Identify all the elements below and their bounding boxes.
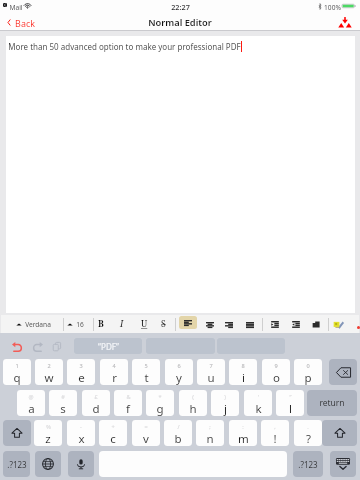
button[interactable]: 1	[3, 359, 31, 385]
button[interactable]: “PDF”	[74, 338, 142, 354]
staticText: &	[126, 393, 131, 401]
staticText: 22:27	[171, 2, 190, 12]
staticText: b	[174, 431, 182, 446]
staticText: I	[120, 318, 124, 330]
staticText: 3	[79, 362, 83, 370]
staticText: r	[112, 370, 117, 385]
staticText: x	[78, 431, 85, 446]
staticText: More than 50 advanced option to make you…	[8, 41, 241, 52]
button[interactable]: :	[229, 420, 257, 446]
staticText: 4	[112, 362, 116, 370]
staticText: 2	[47, 362, 51, 370]
staticText: =	[144, 423, 148, 431]
button[interactable]: 8	[229, 359, 257, 385]
button[interactable]: U	[135, 315, 153, 333]
button[interactable]: (	[179, 390, 207, 416]
staticText: w	[44, 370, 54, 385]
button[interactable]: Align 2	[219, 316, 238, 333]
button[interactable]: £	[82, 390, 110, 416]
staticText: q	[13, 370, 21, 385]
staticText: )	[224, 393, 226, 401]
button[interactable]: Change language	[35, 451, 61, 477]
staticText: l	[289, 401, 292, 416]
button[interactable]: Undo	[7, 337, 26, 356]
button[interactable]: 5	[132, 359, 160, 385]
staticText: @	[28, 393, 34, 401]
button[interactable]: 7	[197, 359, 225, 385]
staticText: +	[111, 423, 115, 431]
staticText: z	[45, 431, 51, 446]
staticText: 1	[15, 362, 19, 370]
button[interactable]: More than 50 advanced option to make you…	[6, 36, 355, 313]
button[interactable]: .	[294, 420, 322, 446]
button[interactable]: 6	[165, 359, 193, 385]
button[interactable]: Align left	[179, 316, 197, 329]
button[interactable]: *	[146, 390, 174, 416]
staticText: f	[126, 401, 130, 416]
button[interactable]: Shift	[3, 420, 31, 446]
button[interactable]: Hide keyboard	[330, 451, 356, 477]
button[interactable]: ‘	[244, 390, 272, 416]
button[interactable]: +	[99, 420, 127, 446]
staticText: y	[176, 370, 182, 385]
button[interactable]: .?123	[293, 451, 323, 477]
button[interactable]: 0	[294, 359, 322, 385]
button[interactable]: Paste	[47, 337, 66, 356]
button[interactable]: Indent 2	[286, 316, 305, 333]
button[interactable]: Shift	[322, 420, 357, 446]
button[interactable]: 2	[35, 359, 63, 385]
button[interactable]: -	[67, 420, 95, 446]
button[interactable]: Verdana	[16, 315, 51, 333]
staticText: 7	[209, 362, 213, 370]
staticText: s	[60, 401, 66, 416]
button[interactable]: Highlighter	[329, 316, 347, 333]
button[interactable]: )	[211, 390, 239, 416]
button[interactable]: /	[164, 420, 192, 446]
button[interactable]: Align 1	[200, 316, 219, 333]
button[interactable]: Back	[6, 14, 35, 31]
button[interactable]: Backspace	[329, 359, 357, 385]
staticText: u	[207, 370, 215, 385]
staticText: /	[177, 423, 180, 431]
staticText: !	[273, 431, 277, 446]
button[interactable]: Indent 1	[265, 316, 284, 333]
button[interactable]: Redo	[28, 337, 47, 356]
button[interactable]: #	[49, 390, 77, 416]
staticText: a	[28, 401, 35, 416]
button[interactable]: 3	[67, 359, 95, 385]
staticText: “PDF”	[98, 341, 119, 352]
button[interactable]: B	[92, 315, 110, 333]
button[interactable]: 4	[100, 359, 128, 385]
button[interactable]: &	[114, 390, 142, 416]
button[interactable]: Export	[335, 15, 354, 30]
button[interactable]: ;	[196, 420, 224, 446]
staticText: return	[319, 397, 345, 409]
button[interactable]: ,	[261, 420, 289, 446]
button[interactable]: 9	[262, 359, 290, 385]
button[interactable]: I	[113, 315, 131, 333]
button[interactable]: return	[307, 390, 357, 416]
button[interactable]: Dictate	[68, 451, 94, 477]
button[interactable]: .?123	[3, 451, 30, 477]
staticText: B	[98, 318, 104, 330]
button[interactable]: S	[154, 315, 172, 333]
staticText: 0	[306, 362, 310, 370]
button[interactable]: Align 3	[240, 316, 259, 333]
staticText: j	[224, 401, 227, 416]
staticText: n	[206, 431, 214, 446]
button[interactable]: 16	[67, 315, 84, 333]
staticText: Verdana	[25, 320, 51, 329]
button[interactable]: %	[34, 420, 62, 446]
staticText: ‘	[258, 393, 259, 401]
button[interactable]: Indent 3	[306, 316, 325, 333]
button[interactable]: @	[17, 390, 45, 416]
staticText: :	[242, 423, 244, 431]
button[interactable]: =	[132, 420, 160, 446]
button[interactable]: ”	[276, 390, 304, 416]
staticText: d	[92, 401, 100, 416]
staticText: c	[110, 431, 116, 446]
staticText: .	[307, 423, 309, 431]
